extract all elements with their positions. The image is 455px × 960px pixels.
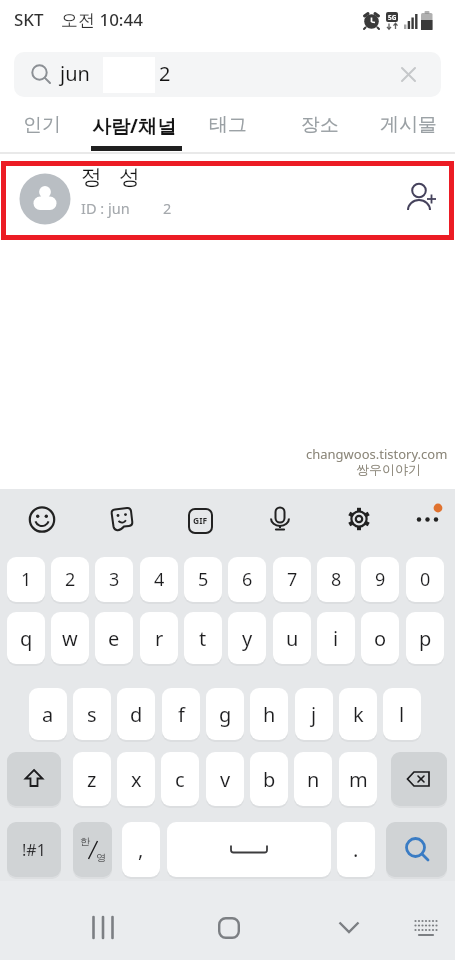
button[interactable]: g: [206, 688, 244, 740]
button[interactable]: [412, 916, 440, 939]
staticText: w: [62, 625, 78, 652]
staticText: q: [20, 625, 33, 652]
staticText: 성: [119, 164, 140, 190]
button[interactable]: k: [339, 688, 377, 740]
button[interactable]: 사람/채널: [92, 113, 176, 139]
staticText: 쌍우이야기: [356, 461, 421, 477]
button[interactable]: [29, 506, 56, 533]
button[interactable]: b: [250, 752, 288, 806]
button[interactable]: d: [117, 688, 155, 740]
button[interactable]: 정: [1, 161, 454, 240]
button[interactable]: 게시물: [380, 113, 437, 137]
button[interactable]: x: [117, 752, 155, 806]
staticText: s: [87, 701, 97, 728]
staticText: c: [175, 766, 185, 793]
staticText: GIF: [193, 515, 208, 527]
button[interactable]: 인기: [23, 113, 61, 137]
button[interactable]: [91, 917, 116, 938]
button[interactable]: 3: [95, 557, 133, 602]
staticText: SKT: [14, 8, 44, 31]
staticText: 9: [375, 567, 386, 592]
button[interactable]: y: [228, 612, 266, 664]
staticText: a: [42, 701, 54, 728]
button[interactable]: 0: [406, 557, 444, 602]
staticText: l: [399, 701, 405, 728]
button[interactable]: [386, 822, 447, 877]
button[interactable]: f: [162, 688, 200, 740]
button[interactable]: 1: [7, 557, 45, 602]
button[interactable]: q: [7, 612, 45, 664]
staticText: 5: [198, 567, 209, 592]
staticText: m: [349, 766, 368, 793]
staticText: 0: [420, 567, 431, 592]
staticText: 6: [242, 567, 253, 592]
button[interactable]: [107, 506, 135, 534]
button[interactable]: r: [140, 612, 178, 664]
button[interactable]: [347, 507, 371, 531]
button[interactable]: h: [250, 688, 288, 740]
button[interactable]: c: [161, 752, 199, 806]
button[interactable]: 6: [228, 557, 266, 602]
button[interactable]: 4: [140, 557, 178, 602]
button[interactable]: [7, 752, 61, 806]
button[interactable]: j: [295, 688, 333, 740]
button[interactable]: 5: [184, 557, 222, 602]
staticText: 한: [80, 835, 90, 848]
button[interactable]: s: [73, 688, 111, 740]
button[interactable]: ,: [122, 822, 160, 877]
button[interactable]: [218, 917, 240, 939]
staticText: o: [374, 625, 387, 652]
button[interactable]: n: [294, 752, 332, 806]
button[interactable]: l: [383, 688, 421, 740]
button[interactable]: t: [184, 612, 222, 664]
button[interactable]: w: [51, 612, 89, 664]
button[interactable]: v: [206, 752, 244, 806]
staticText: 오전 10:44: [61, 8, 143, 31]
button[interactable]: !#1: [7, 822, 61, 877]
button[interactable]: [167, 822, 331, 877]
staticText: 4: [154, 567, 165, 592]
button[interactable]: z: [73, 752, 111, 806]
button[interactable]: i: [317, 612, 355, 664]
button[interactable]: [338, 921, 360, 934]
button[interactable]: p: [406, 612, 444, 664]
button[interactable]: 한: [73, 822, 112, 877]
staticText: n: [307, 766, 320, 793]
button[interactable]: jun: [14, 52, 441, 97]
staticText: 7: [287, 567, 298, 592]
staticText: 8: [331, 567, 342, 592]
button[interactable]: a: [29, 688, 67, 740]
staticText: v: [220, 766, 231, 793]
button[interactable]: 2: [51, 557, 89, 602]
button[interactable]: 태그: [209, 113, 247, 137]
staticText: 5G: [388, 13, 397, 22]
staticText: e: [108, 625, 120, 652]
staticText: 2: [65, 567, 76, 592]
button[interactable]: [406, 183, 438, 215]
button[interactable]: e: [95, 612, 133, 664]
button[interactable]: 7: [273, 557, 311, 602]
button[interactable]: [391, 752, 447, 806]
button[interactable]: 8: [317, 557, 355, 602]
staticText: g: [219, 701, 232, 728]
button[interactable]: [398, 64, 419, 85]
staticText: i: [333, 625, 339, 652]
button[interactable]: u: [273, 612, 311, 664]
staticText: r: [155, 625, 164, 652]
button[interactable]: 9: [361, 557, 399, 602]
button[interactable]: GIF: [188, 508, 213, 534]
staticText: z: [87, 766, 97, 793]
button[interactable]: o: [361, 612, 399, 664]
button[interactable]: [269, 506, 291, 533]
button[interactable]: [412, 498, 446, 532]
staticText: ,: [138, 836, 144, 863]
staticText: 정: [81, 164, 102, 190]
staticText: !#1: [22, 839, 46, 861]
staticText: f: [178, 701, 185, 728]
button[interactable]: .: [337, 822, 375, 877]
button[interactable]: m: [339, 752, 377, 806]
button[interactable]: 장소: [301, 113, 339, 137]
staticText: 1: [21, 567, 32, 592]
staticText: ID : jun: [81, 198, 130, 218]
staticText: u: [286, 625, 299, 652]
